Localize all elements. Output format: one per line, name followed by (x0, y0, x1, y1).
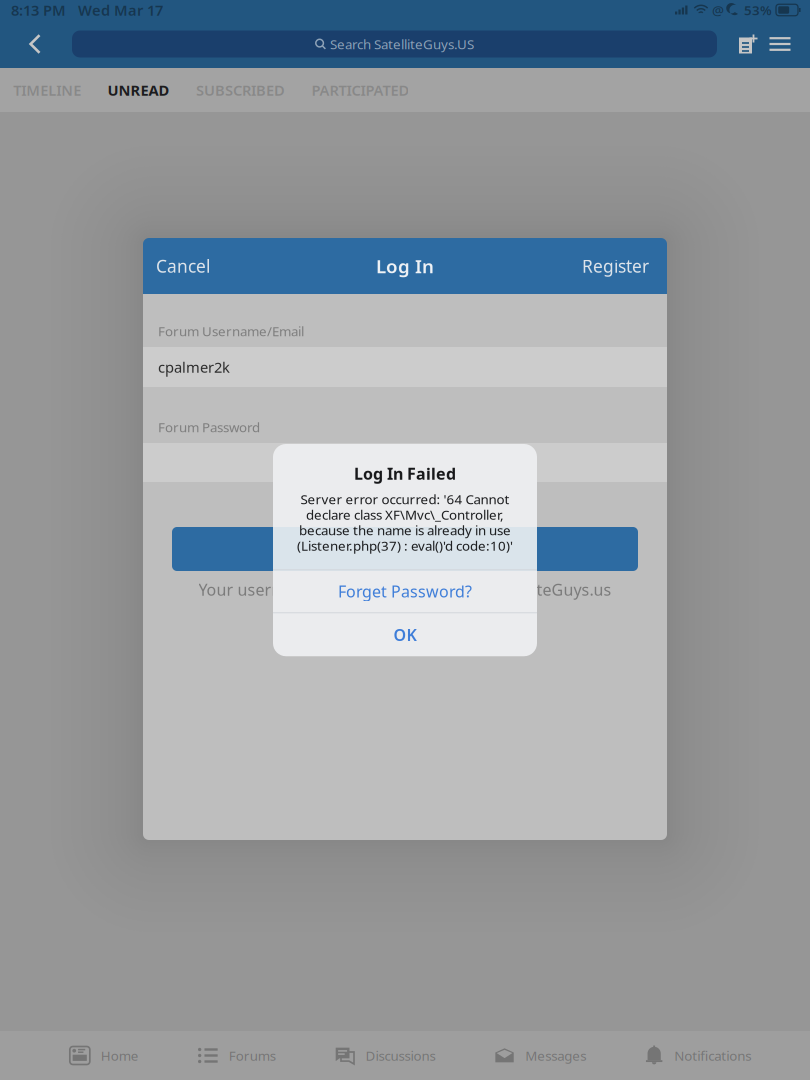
button[interactable]: Home (70, 1031, 139, 1080)
staticText: SUBSCRIBED (196, 80, 285, 100)
staticText: Forums (229, 1047, 276, 1064)
button[interactable]: Log In (172, 527, 638, 571)
button[interactable]: UNREAD (94, 68, 183, 112)
staticText: Register (582, 254, 649, 277)
staticText: Notifications (674, 1047, 751, 1064)
staticText: TIMELINE (13, 80, 81, 100)
staticText: Forum Username/Email (158, 322, 304, 340)
button[interactable]: Forget Password? (273, 570, 537, 612)
button[interactable]: Back (29, 20, 72, 68)
staticText: UNREAD (108, 80, 170, 100)
button[interactable]: Menu (769, 20, 791, 68)
button[interactable]: Search SatelliteGuys.US (72, 30, 717, 57)
button[interactable]: Forums (198, 1031, 276, 1080)
staticText: Wed Mar 17 (78, 0, 163, 20)
button[interactable]: Cancel (143, 238, 223, 294)
staticText: PARTICIPATED (311, 80, 409, 100)
staticText: Log In (376, 537, 434, 561)
staticText: because the name is already in use (299, 521, 511, 539)
staticText: Server error occurred: '64 Cannot (300, 490, 509, 508)
staticText: Forum Password (158, 418, 260, 436)
staticText: Discussions (365, 1047, 435, 1064)
button[interactable]: SUBSCRIBED (183, 68, 298, 112)
button[interactable]: TIMELINE (0, 68, 94, 112)
button[interactable]: New thread (739, 20, 758, 68)
staticText: Log In Failed (354, 463, 456, 484)
staticText: Cancel (156, 254, 210, 277)
button[interactable]: Register (564, 238, 667, 294)
staticText: 8:13 PM (11, 0, 66, 20)
staticText: Home (101, 1047, 139, 1064)
staticText: declare class XF\Mvc\_Controller, (306, 506, 504, 523)
staticText: Forget Password? (338, 581, 472, 602)
staticText: (Listener.php(37) : eval()'d code:10)' (297, 537, 513, 554)
button[interactable]: Discussions (334, 1031, 435, 1080)
staticText: Messages (525, 1047, 586, 1064)
button[interactable]: Notifications (645, 1031, 751, 1080)
button[interactable]: Messages (494, 1031, 586, 1080)
staticText: 53% (744, 1, 772, 19)
staticText: Search SatelliteGuys.US (330, 35, 474, 53)
button[interactable]: OK (273, 613, 537, 656)
staticText: OK (393, 624, 416, 645)
staticText: @ (712, 1, 724, 19)
staticText: Log In (376, 254, 434, 278)
staticText: cpalmer2k (158, 357, 230, 377)
staticText: Your username/e-mail & password for Sate… (198, 579, 611, 600)
button[interactable]: PARTICIPATED (298, 68, 423, 112)
